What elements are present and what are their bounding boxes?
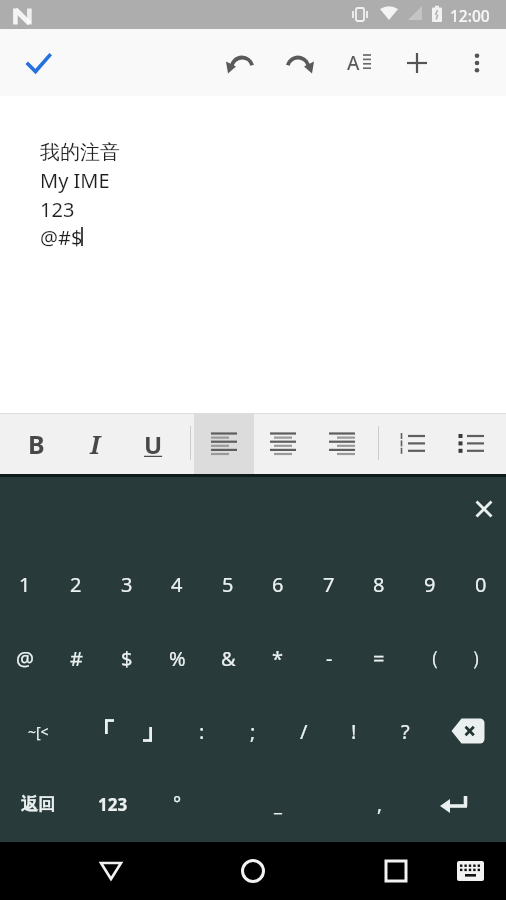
button[interactable]: [395, 40, 439, 86]
button[interactable]: [382, 414, 442, 474]
staticText: ?: [401, 718, 410, 745]
staticText: %: [169, 645, 186, 672]
staticText: 9: [424, 571, 436, 598]
staticText: 123: [40, 196, 75, 223]
button[interactable]: 123: [88, 768, 138, 840]
staticText: $: [121, 645, 133, 672]
staticText: 我的注音: [40, 140, 120, 165]
staticText: -: [326, 645, 333, 672]
button[interactable]: ）: [456, 622, 506, 694]
button[interactable]: ~[<: [0, 695, 76, 767]
staticText: A: [347, 50, 360, 76]
button[interactable]: @: [0, 622, 50, 694]
button[interactable]: [15, 40, 61, 86]
button[interactable]: /: [279, 695, 329, 767]
staticText: 7: [323, 571, 335, 598]
button[interactable]: ,: [355, 768, 405, 840]
button[interactable]: U: [123, 414, 183, 474]
button[interactable]: A: [338, 40, 382, 86]
staticText: ;: [250, 718, 256, 745]
button[interactable]: -: [304, 622, 354, 694]
button[interactable]: °: [152, 768, 202, 840]
button[interactable]: %: [152, 622, 202, 694]
button[interactable]: I: [65, 414, 125, 474]
button[interactable]: [430, 695, 506, 767]
staticText: ）: [471, 646, 491, 671]
staticText: （: [420, 646, 440, 671]
staticText: !: [351, 718, 357, 745]
staticText: 返回: [21, 794, 55, 815]
button[interactable]: [462, 487, 506, 531]
staticText: &: [221, 645, 236, 672]
button[interactable]: [86, 846, 136, 896]
button[interactable]: [276, 40, 320, 86]
button[interactable]: 7: [304, 548, 354, 620]
staticText: 8: [373, 571, 385, 598]
staticText: My IME: [40, 167, 110, 194]
button[interactable]: ?: [380, 695, 430, 767]
staticText: 123: [98, 793, 128, 816]
button[interactable]: [228, 846, 278, 896]
button[interactable]: _: [203, 768, 353, 840]
button[interactable]: [127, 695, 177, 767]
staticText: =: [373, 645, 385, 672]
button[interactable]: [448, 849, 492, 893]
staticText: 0: [475, 571, 487, 598]
staticText: °: [173, 791, 182, 817]
button[interactable]: 9: [405, 548, 455, 620]
button[interactable]: 返回: [0, 768, 76, 840]
staticText: ~[<: [28, 722, 49, 741]
button[interactable]: [455, 40, 499, 86]
staticText: /: [300, 718, 308, 745]
staticText: 2: [70, 571, 82, 598]
staticText: #: [70, 645, 83, 672]
button[interactable]: 0: [456, 548, 506, 620]
button[interactable]: ;: [228, 695, 278, 767]
button[interactable]: =: [354, 622, 404, 694]
staticText: _: [274, 792, 282, 817]
button[interactable]: 6: [253, 548, 303, 620]
button[interactable]: [441, 414, 501, 474]
button[interactable]: &: [203, 622, 253, 694]
staticText: 3: [121, 571, 133, 598]
button[interactable]: 2: [51, 548, 101, 620]
staticText: *: [272, 645, 284, 672]
button[interactable]: $: [102, 622, 152, 694]
staticText: 6: [272, 571, 284, 598]
button[interactable]: #: [51, 622, 101, 694]
button[interactable]: [76, 695, 126, 767]
staticText: 5: [222, 571, 234, 598]
staticText: B: [28, 427, 45, 461]
staticText: I: [90, 427, 101, 461]
button[interactable]: 3: [102, 548, 152, 620]
button[interactable]: !: [329, 695, 379, 767]
button[interactable]: B: [6, 414, 66, 474]
staticText: 1: [19, 571, 31, 598]
staticText: @: [16, 645, 34, 672]
staticText: ,: [377, 791, 383, 817]
staticText: 4: [171, 571, 183, 598]
staticText: 12:00: [450, 5, 490, 26]
button[interactable]: （: [405, 622, 455, 694]
button[interactable]: 1: [0, 548, 50, 620]
button[interactable]: [371, 846, 421, 896]
button[interactable]: [253, 414, 313, 474]
button[interactable]: :: [177, 695, 227, 767]
button[interactable]: [410, 768, 500, 840]
button[interactable]: [194, 414, 254, 474]
staticText: U: [144, 428, 163, 461]
staticText: :: [199, 718, 205, 745]
button[interactable]: [220, 40, 264, 86]
button[interactable]: [312, 414, 372, 474]
button[interactable]: 5: [203, 548, 253, 620]
button[interactable]: *: [253, 622, 303, 694]
staticText: @#$: [40, 224, 83, 251]
button[interactable]: 8: [354, 548, 404, 620]
button[interactable]: 4: [152, 548, 202, 620]
